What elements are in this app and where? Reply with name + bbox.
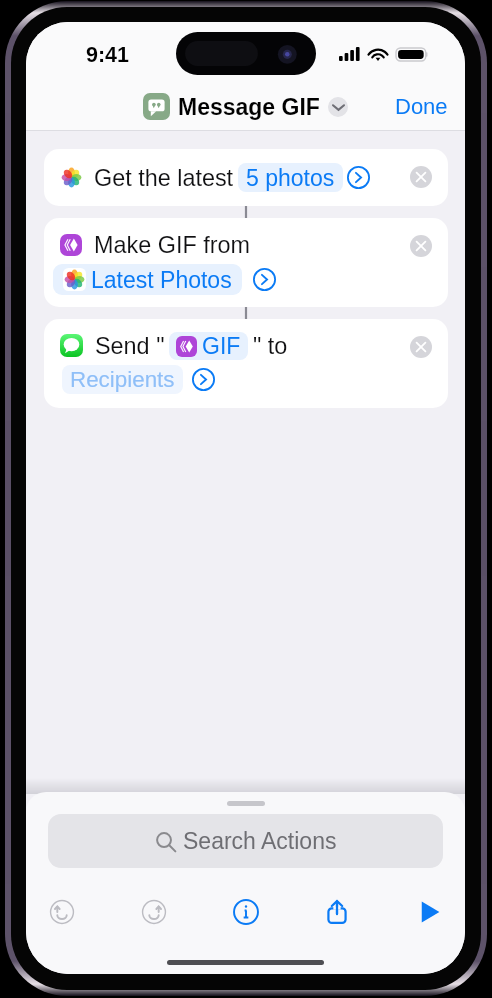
- staticText: Recipients: [70, 367, 175, 392]
- staticText: GIF: [202, 333, 241, 359]
- button[interactable]: Make GIF from: [44, 218, 448, 307]
- button[interactable]: Recipients: [62, 365, 183, 394]
- button[interactable]: Share: [315, 890, 359, 934]
- staticText: Get the latest: [94, 165, 234, 191]
- staticText: Search Actions: [183, 828, 337, 854]
- staticText: Done: [395, 94, 448, 119]
- staticText: 5 photos: [246, 165, 335, 191]
- button[interactable]: Redo: [132, 890, 176, 934]
- button[interactable]: 5 photos: [238, 163, 343, 192]
- button[interactable]: Latest Photos: [53, 264, 242, 295]
- staticText: 9:41: [86, 43, 130, 67]
- button[interactable]: Undo: [40, 890, 84, 934]
- button[interactable]: Info: [224, 890, 268, 934]
- staticText: Message GIF: [178, 94, 320, 120]
- staticText: Latest Photos: [91, 267, 232, 293]
- button[interactable]: Run: [407, 890, 451, 934]
- staticText: " to: [253, 333, 288, 359]
- button[interactable]: Search Actions: [48, 814, 443, 868]
- staticText: Send ": [95, 333, 165, 359]
- button[interactable]: Message GIF: [143, 93, 348, 120]
- button[interactable]: GIF: [169, 332, 248, 360]
- staticText: Make GIF from: [94, 232, 250, 258]
- button[interactable]: Send ": [44, 319, 448, 408]
- button[interactable]: Get the latest: [44, 149, 448, 206]
- button[interactable]: Done: [378, 88, 465, 125]
